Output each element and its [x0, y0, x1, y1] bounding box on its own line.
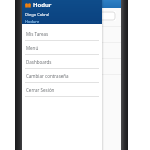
button[interactable] — [26, 11, 116, 21]
button[interactable]: Menú — [22, 41, 102, 54]
button[interactable]: Cambiar contraseña — [22, 69, 102, 82]
button[interactable]: Cerrar Sesión — [22, 83, 102, 96]
staticText: Mis Tareas — [26, 31, 49, 37]
staticText: Dashboards — [26, 59, 52, 65]
button[interactable]: Hodur logo — [25, 1, 52, 9]
staticText: Diego Cabral — [25, 12, 50, 17]
staticText: Cerrar Sesión — [26, 87, 55, 93]
staticText: Cambiar contraseña — [26, 73, 69, 79]
button[interactable]: Hodure — [25, 19, 40, 24]
button[interactable]: Dashboards — [22, 55, 102, 68]
button[interactable]: Mis Tareas — [22, 27, 102, 40]
staticText: Menú — [26, 45, 39, 51]
staticText: Hodur — [33, 1, 52, 9]
